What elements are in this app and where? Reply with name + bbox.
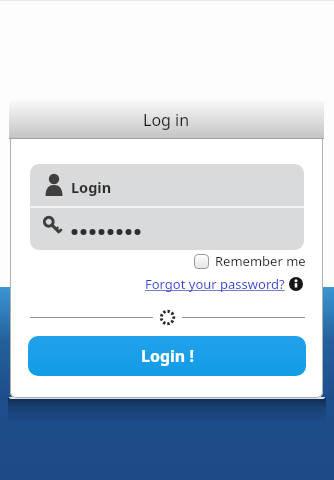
button[interactable] (30, 164, 304, 250)
button[interactable]: Login ! (28, 336, 306, 376)
staticText: Remember me (215, 252, 306, 270)
staticText: Log in (143, 109, 190, 131)
button[interactable]: Remember me (0, 252, 306, 270)
button[interactable]: Forgot your password? (145, 275, 285, 293)
staticText: Login (71, 177, 112, 197)
button[interactable] (289, 277, 303, 291)
staticText: Login ! (141, 345, 194, 367)
